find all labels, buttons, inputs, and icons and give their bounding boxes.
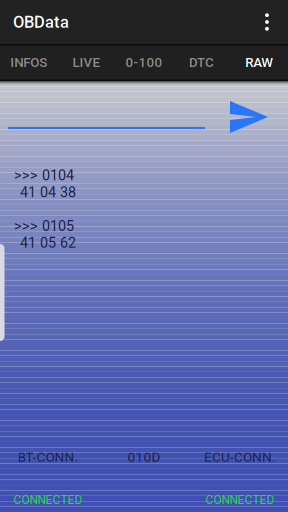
button[interactable]: DTC [173,44,230,81]
staticText: 010D [127,449,160,465]
staticText: INFOS [10,55,47,70]
staticText: >>> 0105 [14,218,74,234]
staticText: >>> 0104 [14,167,74,184]
button[interactable]: Command entry [8,97,205,129]
staticText: CONNECTED [13,493,82,507]
button[interactable]: 0-100 [115,44,173,81]
staticText: LIVE [72,55,100,70]
button[interactable]: LIVE [58,44,115,81]
staticText: 0-100 [125,55,162,70]
staticText: ECU-CONN. [204,449,276,465]
button[interactable]: More options [253,7,281,37]
staticText: CONNECTED [205,493,274,507]
staticText: 41 05 62 [20,234,76,251]
staticText: RAW [245,55,273,70]
staticText: OBData [13,12,69,32]
button[interactable]: INFOS [0,44,58,81]
button[interactable]: RAW [230,44,288,81]
staticText: 41 04 38 [20,184,76,201]
staticText: BT-CONN. [17,449,78,465]
button[interactable]: Send command [230,101,268,133]
staticText: DTC [189,55,214,70]
